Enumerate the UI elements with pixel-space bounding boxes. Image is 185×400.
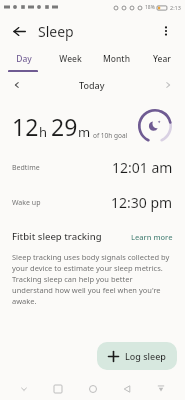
button[interactable]: Month bbox=[93, 48, 139, 70]
staticText: Log sleep bbox=[125, 350, 166, 362]
staticText: Today bbox=[79, 79, 105, 91]
button[interactable]: Day bbox=[0, 48, 47, 70]
button[interactable]: Learn more bbox=[131, 232, 173, 242]
button[interactable]: Week bbox=[47, 48, 93, 70]
button[interactable]: Collapse bbox=[14, 379, 34, 399]
button[interactable]: Back bbox=[117, 379, 137, 399]
staticText: 18% bbox=[145, 4, 155, 11]
button[interactable]: Log sleep bbox=[97, 342, 177, 370]
staticText: of 10h goal bbox=[93, 131, 128, 140]
button[interactable]: Previous day bbox=[8, 76, 26, 94]
staticText: Learn more bbox=[131, 232, 173, 242]
button[interactable]: Home bbox=[83, 379, 103, 399]
button[interactable]: Back bbox=[6, 18, 32, 44]
staticText: Bedtime bbox=[12, 163, 40, 173]
staticText: h bbox=[39, 123, 48, 141]
staticText: Week bbox=[59, 53, 82, 65]
staticText: Year bbox=[153, 53, 171, 65]
button[interactable]: Next day bbox=[159, 76, 177, 94]
button[interactable]: More options bbox=[153, 18, 179, 44]
button[interactable]: Hide keyboard bbox=[151, 379, 171, 399]
staticText: Day bbox=[16, 53, 32, 65]
staticText: Fitbit sleep tracking bbox=[12, 230, 102, 243]
button[interactable]: Wake up bbox=[0, 193, 185, 212]
staticText: 12:30 pm bbox=[111, 193, 173, 212]
staticText: m bbox=[78, 123, 91, 141]
button[interactable]: Bedtime bbox=[0, 158, 185, 177]
staticText: Sleep tracking uses body signals collect… bbox=[12, 252, 173, 306]
staticText: 12 bbox=[12, 111, 39, 142]
staticText: Sleep bbox=[38, 22, 74, 41]
staticText: 12:01 am bbox=[112, 158, 173, 177]
staticText: Wake up bbox=[12, 198, 41, 208]
button[interactable]: Year bbox=[139, 48, 185, 70]
staticText: Month bbox=[103, 53, 130, 65]
staticText: 29 bbox=[51, 111, 78, 142]
staticText: 2:13 bbox=[170, 4, 181, 11]
button[interactable]: Recents bbox=[48, 379, 68, 399]
